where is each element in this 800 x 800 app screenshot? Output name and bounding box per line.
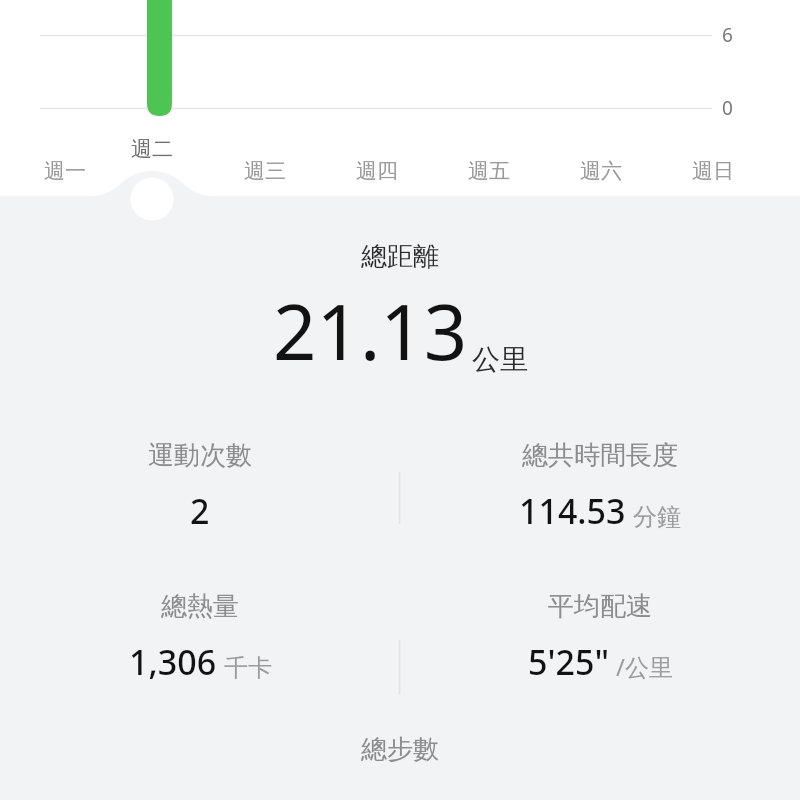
staticText: 0 [722, 95, 733, 121]
button[interactable]: 週一 [38, 155, 92, 187]
staticText: 千卡 [224, 653, 272, 683]
staticText: 6 [722, 22, 733, 48]
staticText: 平均配速 [548, 590, 652, 623]
staticText: 總步數 [361, 733, 439, 766]
button[interactable]: 週四 [350, 155, 404, 187]
button[interactable]: 總共時間長度 [400, 435, 800, 538]
staticText: 114.53 [519, 488, 626, 534]
staticText: 週一 [44, 158, 86, 184]
staticText: 總熱量 [161, 590, 239, 623]
staticText: 週五 [468, 158, 510, 184]
staticText: 1,306 [129, 639, 217, 685]
staticText: 公里 [472, 342, 528, 377]
button[interactable]: 平均配速 [400, 586, 800, 689]
button[interactable]: 週三 [238, 155, 292, 187]
staticText: 21.13 [273, 279, 468, 383]
staticText: 週二 [131, 136, 173, 162]
staticText: 5'25" [528, 639, 609, 685]
staticText: 週日 [692, 158, 734, 184]
button[interactable]: 週二 [125, 133, 179, 165]
staticText: 週六 [580, 158, 622, 184]
staticText: 分鐘 [633, 502, 681, 532]
button[interactable]: 週五 [462, 155, 516, 187]
staticText: 運動次數 [148, 439, 252, 472]
button[interactable]: 運動次數 [0, 435, 400, 538]
staticText: 週三 [244, 158, 286, 184]
button[interactable]: 週六 [574, 155, 628, 187]
staticText: 總距離 [361, 240, 439, 273]
staticText: /公里 [616, 650, 673, 683]
staticText: 總共時間長度 [522, 439, 678, 472]
button[interactable]: 週日 [686, 155, 740, 187]
staticText: 週四 [356, 158, 398, 184]
button[interactable]: 總熱量 [0, 586, 400, 689]
staticText: 2 [190, 488, 210, 534]
